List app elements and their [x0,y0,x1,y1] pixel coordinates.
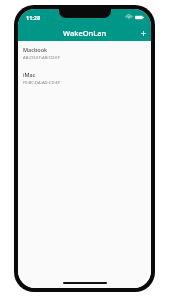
button[interactable]: Add device [135,25,151,41]
staticText: 11:28 [26,14,41,21]
staticText: iMac [23,71,36,78]
staticText: WakeOnLan [63,28,107,38]
staticText: AB:CD:EF:AB:CD:EF [23,55,60,61]
button[interactable]: Macbook [18,41,151,66]
staticText: FE:BC:DA:AD:CD:EF [23,80,61,86]
button[interactable]: iMac [18,66,151,91]
staticText: Macbook [23,46,48,53]
